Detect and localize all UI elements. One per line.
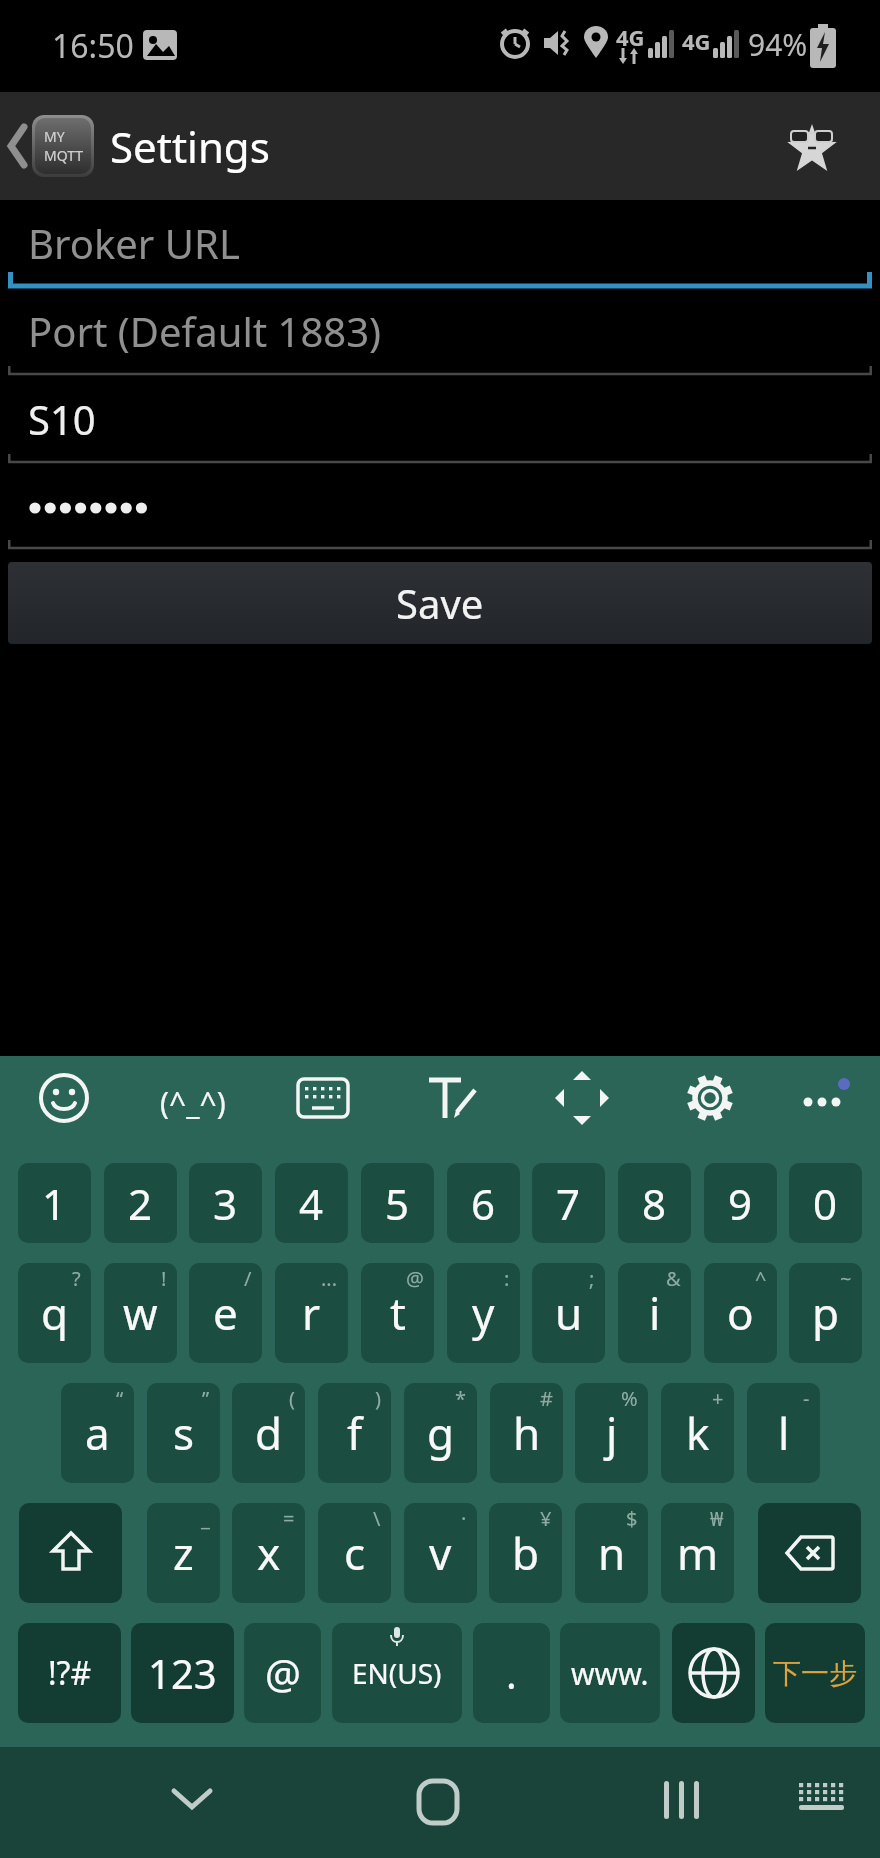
- staticText: 9: [728, 1175, 753, 1232]
- button[interactable]: @: [244, 1623, 321, 1723]
- button[interactable]: r: [275, 1263, 348, 1363]
- button[interactable]: [672, 1623, 755, 1723]
- staticText: ·: [461, 1505, 467, 1532]
- button[interactable]: 7: [532, 1163, 605, 1243]
- staticText: !?#: [48, 1651, 92, 1695]
- staticText: MQTT: [44, 146, 84, 165]
- button[interactable]: 4: [275, 1163, 348, 1243]
- button[interactable]: j: [575, 1383, 648, 1483]
- staticText: ?: [72, 1265, 81, 1292]
- button[interactable]: x: [232, 1503, 305, 1603]
- button[interactable]: 8: [618, 1163, 691, 1243]
- button[interactable]: 5: [361, 1163, 434, 1243]
- staticText: ~: [840, 1265, 852, 1292]
- staticText: z: [173, 1523, 194, 1583]
- button[interactable]: d: [232, 1383, 305, 1483]
- button[interactable]: e: [189, 1263, 262, 1363]
- staticText: Broker URL: [28, 216, 240, 270]
- button[interactable]: 0: [789, 1163, 862, 1243]
- staticText: @: [265, 1646, 301, 1700]
- staticText: ”: [202, 1385, 210, 1412]
- staticText: h: [513, 1403, 541, 1463]
- button[interactable]: [796, 1783, 848, 1821]
- staticText: ₩: [710, 1505, 724, 1532]
- staticText: -: [803, 1385, 810, 1412]
- button[interactable]: 3: [189, 1163, 262, 1243]
- button[interactable]: [38, 1072, 90, 1124]
- button[interactable]: [19, 1503, 122, 1603]
- button[interactable]: (^_^): [160, 1082, 226, 1123]
- button[interactable]: 1: [18, 1163, 91, 1243]
- staticText: $: [626, 1505, 638, 1532]
- staticText: .: [506, 1646, 517, 1700]
- staticText: ¥: [540, 1505, 552, 1532]
- staticText: p: [812, 1283, 840, 1343]
- staticText: n: [598, 1523, 626, 1583]
- staticText: :: [504, 1265, 510, 1292]
- staticText: k: [686, 1403, 710, 1463]
- button[interactable]: z: [147, 1503, 220, 1603]
- button[interactable]: f: [318, 1383, 391, 1483]
- button[interactable]: b: [489, 1503, 562, 1603]
- button[interactable]: [297, 1078, 349, 1120]
- button[interactable]: g: [404, 1383, 477, 1483]
- button[interactable]: [554, 1070, 610, 1126]
- button[interactable]: 123: [131, 1623, 234, 1723]
- staticText: o: [727, 1283, 754, 1343]
- staticText: EN(US): [352, 1654, 442, 1692]
- button[interactable]: i: [618, 1263, 691, 1363]
- button[interactable]: .: [473, 1623, 550, 1723]
- staticText: 0: [813, 1175, 838, 1232]
- button[interactable]: k: [661, 1383, 734, 1483]
- button[interactable]: [684, 1072, 736, 1124]
- button[interactable]: 9: [704, 1163, 777, 1243]
- button[interactable]: 下一步: [765, 1623, 865, 1723]
- button[interactable]: EN(US): [332, 1623, 462, 1723]
- staticText: 4G: [682, 26, 711, 56]
- button[interactable]: [800, 1076, 856, 1116]
- button[interactable]: u: [532, 1263, 605, 1363]
- button[interactable]: v: [404, 1503, 477, 1603]
- button[interactable]: a: [61, 1383, 134, 1483]
- staticText: a: [85, 1403, 110, 1463]
- button[interactable]: Save: [8, 562, 872, 644]
- staticText: +: [712, 1385, 724, 1412]
- button[interactable]: MY: [0, 92, 270, 200]
- staticText: @: [406, 1265, 424, 1292]
- staticText: &: [666, 1265, 681, 1292]
- button[interactable]: n: [575, 1503, 648, 1603]
- staticText: 4: [299, 1175, 324, 1232]
- staticText: ...: [321, 1265, 338, 1292]
- button[interactable]: www.: [560, 1623, 660, 1723]
- button[interactable]: !?#: [18, 1623, 121, 1723]
- staticText: i: [649, 1283, 661, 1343]
- button[interactable]: 2: [104, 1163, 177, 1243]
- staticText: 6: [471, 1175, 496, 1232]
- staticText: !: [161, 1265, 167, 1292]
- staticText: c: [344, 1523, 366, 1583]
- button[interactable]: s: [147, 1383, 220, 1483]
- button[interactable]: [427, 1074, 479, 1124]
- button[interactable]: l: [747, 1383, 820, 1483]
- button[interactable]: m: [661, 1503, 734, 1603]
- button[interactable]: q: [18, 1263, 91, 1363]
- button[interactable]: 6: [447, 1163, 520, 1243]
- staticText: (: [289, 1385, 295, 1412]
- button[interactable]: y: [447, 1263, 520, 1363]
- button[interactable]: o: [704, 1263, 777, 1363]
- staticText: f: [347, 1403, 363, 1463]
- button[interactable]: w: [104, 1263, 177, 1363]
- button[interactable]: p: [789, 1263, 862, 1363]
- staticText: g: [427, 1403, 455, 1463]
- staticText: u: [555, 1283, 583, 1343]
- button[interactable]: t: [361, 1263, 434, 1363]
- button[interactable]: [664, 1781, 704, 1821]
- button[interactable]: h: [490, 1383, 563, 1483]
- button[interactable]: c: [318, 1503, 391, 1603]
- button[interactable]: [786, 120, 838, 172]
- staticText: l: [778, 1403, 790, 1463]
- staticText: 16:50: [52, 24, 134, 68]
- button[interactable]: [758, 1503, 861, 1603]
- button[interactable]: [417, 1779, 459, 1825]
- button[interactable]: [172, 1787, 212, 1813]
